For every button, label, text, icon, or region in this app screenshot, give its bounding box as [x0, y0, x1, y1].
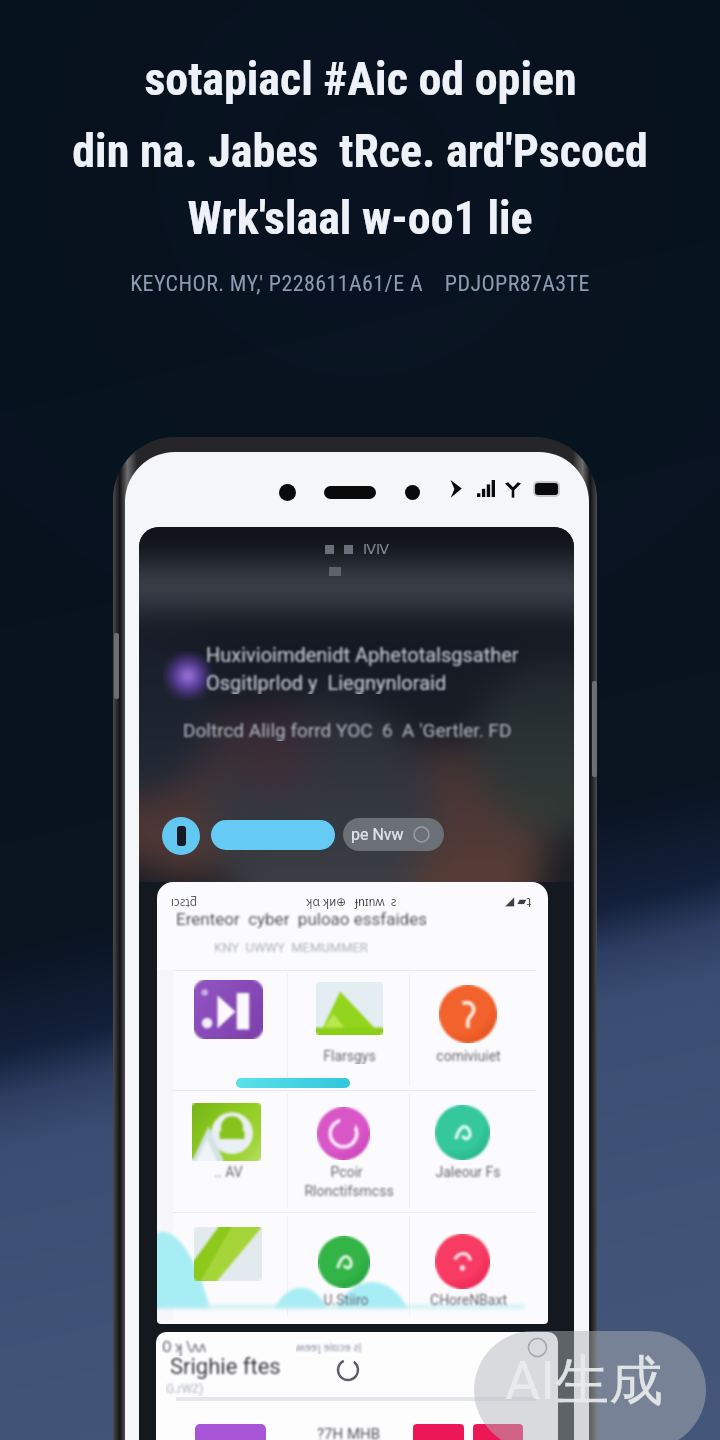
staticText: Osgitlprlod y Liegnynloraid — [206, 671, 447, 694]
button[interactable]: Photos app — [316, 982, 383, 1035]
staticText: Huxivioimdenidt Aphetotalsgsather — [206, 643, 519, 666]
staticText: ıɔƨʇƌ — [171, 893, 198, 909]
staticText: Jaleour Fs — [435, 1164, 501, 1180]
staticText: Doltrcd Alilg forrd YOC 6 A 'Gertler. FD — [183, 719, 512, 741]
staticText: comiviuiet — [436, 1048, 501, 1064]
staticText: Erenteor cyber puloao essfaides — [176, 909, 427, 929]
button[interactable]: Open — [211, 820, 335, 850]
staticText: Wrk'slaal w-oo1 lie — [187, 191, 533, 245]
button[interactable]: Jaleour Fs — [435, 1105, 490, 1160]
staticText: din na. Jabes tRce. ard'Pscocd — [72, 124, 648, 178]
staticText: Srighie ftes — [170, 1354, 281, 1380]
staticText: ⅣⅣ — [363, 541, 389, 557]
staticText: O ʞ \ʌʌ — [162, 1337, 207, 1356]
button[interactable]: CHoreNBaxt — [435, 1234, 490, 1289]
staticText: KNY UWWY MEMUMMER — [214, 940, 368, 955]
staticText: ʍɘɘɿ ɘiɒɔɘ ƨ| — [296, 1339, 362, 1354]
staticText: AI生成 — [505, 1347, 663, 1415]
button[interactable]: Play — [162, 817, 200, 855]
staticText: ◢ ▰ʇ — [505, 894, 532, 908]
staticText: ʞɑ ʞи⊕ ɟnɪnʍ ƨ — [306, 893, 397, 909]
staticText: U.Stiiro — [323, 1292, 369, 1308]
staticText: .. AV — [214, 1164, 243, 1180]
staticText: Rlonctifsmcss — [304, 1183, 394, 1199]
button[interactable]: pe Nvw — [343, 818, 444, 851]
button[interactable]: U.Stiiro — [318, 1236, 370, 1288]
button[interactable]: Refresh — [332, 1354, 364, 1386]
staticText: Flarsgys — [323, 1048, 376, 1064]
staticText: G.rWZ) — [166, 1382, 204, 1396]
button[interactable]: Gallery app — [194, 1227, 262, 1281]
button[interactable]: Media app — [194, 980, 263, 1039]
staticText: CHoreNBaxt — [430, 1292, 507, 1308]
staticText: KEYCHOR. MY,' P228611A61/E A PDJOPR87A3T… — [130, 271, 590, 297]
staticText: sotapiacl #Aic od opien — [144, 52, 577, 106]
button[interactable]: comiviuiet — [439, 985, 497, 1043]
button[interactable]: Pcoir — [317, 1107, 370, 1160]
button[interactable]: Browser app — [192, 1103, 261, 1161]
staticText: ?7H MHB — [317, 1425, 381, 1440]
staticText: pe Nvw — [351, 825, 404, 844]
button[interactable]: Account — [523, 1333, 552, 1362]
staticText: Pcoir — [330, 1164, 363, 1180]
